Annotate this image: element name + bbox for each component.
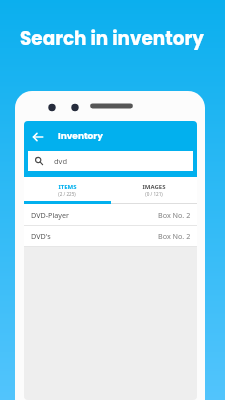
staticText: ITEMS bbox=[58, 183, 77, 191]
staticText: Box No. 2 bbox=[158, 231, 191, 241]
staticText: Inventory bbox=[58, 130, 103, 143]
button[interactable]: dvd bbox=[28, 151, 193, 171]
staticText: IMAGES bbox=[142, 183, 166, 191]
staticText: dvd bbox=[54, 156, 68, 166]
staticText: (0 / 121) bbox=[145, 191, 163, 197]
button[interactable]: IMAGES bbox=[110, 177, 197, 204]
button[interactable]: Back bbox=[28, 127, 48, 147]
staticText: (2 / 225) bbox=[58, 191, 76, 197]
button[interactable]: DVD-Player bbox=[24, 204, 197, 225]
staticText: Box No. 2 bbox=[158, 210, 191, 220]
button[interactable]: ITEMS bbox=[24, 177, 110, 204]
staticText: Search in inventory bbox=[20, 26, 204, 52]
button[interactable]: DVD's bbox=[24, 226, 197, 246]
staticText: DVD-Player bbox=[31, 210, 69, 220]
staticText: DVD's bbox=[31, 231, 51, 241]
